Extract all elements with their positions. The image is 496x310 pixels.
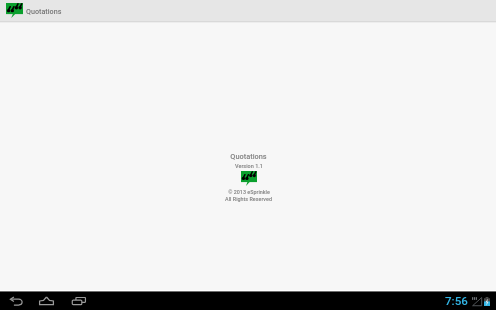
button[interactable]: Back	[1, 292, 31, 310]
button[interactable]: Quotations	[0, 0, 70, 21]
staticText: Quotations	[230, 152, 267, 161]
staticText: 7:56	[445, 294, 468, 308]
staticText: All Rights Reserved	[225, 196, 272, 202]
button[interactable]: Home	[31, 292, 61, 310]
staticText: © 2013 eSprinkle	[228, 189, 270, 195]
staticText: Version 1.1	[235, 163, 263, 169]
staticText: Quotations	[26, 7, 62, 15]
button[interactable]: Recent apps	[64, 292, 94, 310]
